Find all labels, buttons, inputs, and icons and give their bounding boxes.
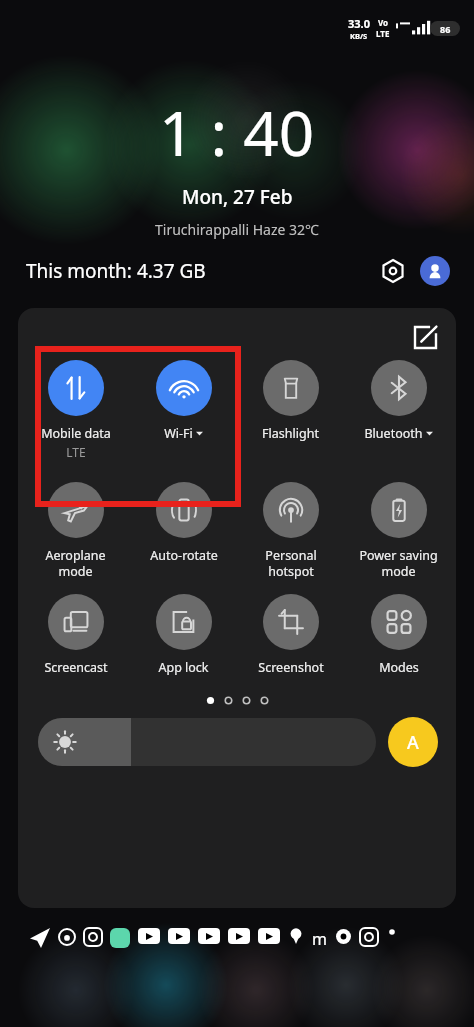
staticText: Tiruchirappalli Haze 32℃: [155, 220, 320, 239]
staticText: m: [312, 928, 327, 950]
staticText: 1 : 40: [159, 90, 315, 174]
staticText: 33.0: [348, 16, 370, 31]
button[interactable]: Account: [420, 256, 450, 286]
staticText: Screencast: [44, 659, 108, 676]
staticText: Screenshot: [258, 659, 324, 676]
button[interactable]: App lock: [134, 594, 233, 676]
button[interactable]: Bluetooth: [349, 360, 448, 442]
button[interactable]: Mobile data: [26, 360, 125, 460]
staticText: 86: [440, 23, 451, 35]
button[interactable]: Wi-Fi: [134, 360, 233, 442]
staticText: Power saving mode: [359, 547, 438, 580]
staticText: LTE: [66, 444, 86, 460]
staticText: Personal hotspot: [265, 547, 317, 580]
button[interactable]: Aeroplane mode: [26, 482, 125, 580]
staticText: This month: 4.37 GB: [26, 258, 206, 284]
button[interactable]: Settings: [374, 252, 412, 290]
button[interactable]: Auto-rotate: [134, 482, 233, 564]
staticText: Modes: [379, 659, 419, 676]
staticText: A: [407, 730, 419, 755]
staticText: LTE: [376, 28, 390, 39]
staticText: Mobile data: [41, 425, 111, 442]
button[interactable]: Personal hotspot: [241, 482, 340, 580]
button[interactable]: Screenshot: [241, 594, 340, 676]
staticText: Mon, 27 Feb: [182, 184, 293, 210]
staticText: KB/S: [350, 31, 368, 41]
staticText: Aeroplane mode: [45, 547, 106, 580]
button[interactable]: Flashlight: [241, 360, 340, 442]
button[interactable]: Power saving mode: [349, 482, 448, 580]
staticText: Auto-rotate: [150, 547, 218, 564]
button[interactable]: A: [388, 717, 438, 767]
button[interactable]: Brightness: [38, 718, 376, 766]
staticText: App lock: [158, 659, 209, 676]
staticText: Bluetooth: [364, 425, 423, 442]
staticText: Flashlight: [262, 425, 319, 442]
button[interactable]: Modes: [349, 594, 448, 676]
staticText: Wi-Fi: [164, 425, 193, 442]
button[interactable]: Edit tiles: [408, 320, 442, 354]
button[interactable]: Screencast: [26, 594, 125, 676]
staticText: Vo: [378, 17, 389, 28]
